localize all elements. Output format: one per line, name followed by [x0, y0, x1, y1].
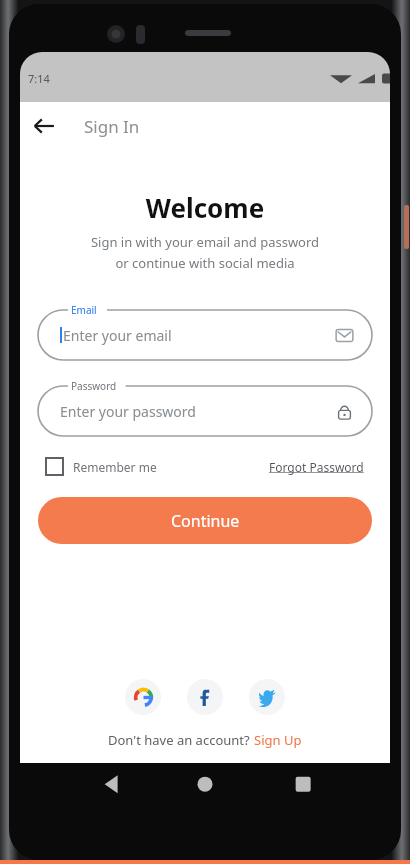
button[interactable]: Sign in with Twitter [249, 679, 285, 715]
button[interactable]: Email [38, 302, 372, 360]
staticText: Password [71, 379, 117, 393]
staticText: Don't have an account? [108, 731, 254, 749]
button[interactable]: Sign in with Facebook [187, 679, 223, 715]
button[interactable]: Sign in with Google [125, 679, 161, 715]
staticText: Continue [171, 510, 240, 532]
staticText: or continue with social media [20, 254, 390, 272]
staticText: Enter your password [60, 402, 196, 421]
staticText: Sign in with your email and password [20, 233, 390, 251]
button[interactable]: Continue [38, 497, 372, 544]
staticText: Welcome [20, 190, 390, 225]
staticText: Forgot Password [269, 459, 364, 475]
button[interactable]: Sign Up [254, 731, 302, 749]
button[interactable]: Forgot Password [269, 459, 364, 475]
button[interactable]: Remember me [46, 458, 157, 475]
button[interactable]: Password [38, 378, 372, 436]
staticText: Email [71, 303, 97, 317]
button[interactable]: Back [20, 102, 68, 150]
staticText: 7:14 [28, 71, 50, 86]
staticText: Sign In [84, 115, 140, 138]
staticText: Remember me [73, 459, 157, 475]
staticText: Sign Up [254, 731, 302, 749]
staticText: Enter your email [63, 326, 172, 345]
